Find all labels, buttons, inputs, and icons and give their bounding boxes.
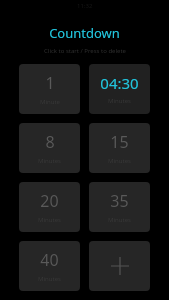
button[interactable]: 15 <box>89 123 150 173</box>
staticText: 04:30 <box>100 73 139 93</box>
staticText: Minutes <box>108 216 131 224</box>
button[interactable]: 35 <box>89 182 150 232</box>
staticText: Minutes <box>38 157 61 165</box>
staticText: 20 <box>40 190 59 212</box>
button[interactable]: Add timer <box>89 241 150 291</box>
button[interactable]: 20 <box>19 182 80 232</box>
staticText: Minutes <box>108 157 131 165</box>
staticText: Minute <box>40 98 60 106</box>
staticText: Click to start / Press to delete <box>44 47 126 55</box>
staticText: Minutes <box>108 97 131 105</box>
button[interactable]: 1 <box>19 64 80 114</box>
staticText: Minutes <box>38 216 61 224</box>
staticText: 1 <box>45 72 55 94</box>
staticText: 35 <box>110 190 129 212</box>
button[interactable]: 40 <box>19 241 80 291</box>
staticText: 40 <box>40 249 59 271</box>
staticText: 11:32 <box>77 2 93 10</box>
button[interactable]: 8 <box>19 123 80 173</box>
staticText: Minutes <box>38 275 61 283</box>
staticText: Countdown <box>49 24 120 42</box>
staticText: 15 <box>110 131 129 153</box>
button[interactable]: 04:30 <box>89 64 150 114</box>
staticText: 8 <box>45 131 55 153</box>
